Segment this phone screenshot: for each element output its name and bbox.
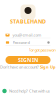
staticText: SIGN IN [18, 56, 38, 64]
button[interactable]: Forgot password? [28, 47, 56, 53]
staticText: STABLEHAND [10, 18, 46, 25]
staticText: Password [12, 40, 29, 45]
staticText: Don't have an account? [0, 64, 39, 70]
button[interactable]: SIGN IN [5, 56, 50, 64]
staticText: you@email.com [12, 32, 41, 38]
button[interactable]: Don't have an account? [0, 64, 56, 70]
staticText: Sign Up [40, 64, 56, 70]
staticText: Need help? Chat with us [9, 88, 50, 94]
button[interactable]: Need help? Chat with us [2, 88, 50, 94]
staticText: Forgot password? [28, 47, 56, 53]
